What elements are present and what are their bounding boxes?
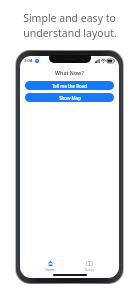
staticText: Tell me the Road	[52, 83, 87, 89]
staticText: understand layout.	[23, 26, 117, 40]
staticText: What Now?	[55, 69, 84, 76]
button[interactable]: Home	[42, 259, 58, 273]
button[interactable]: Guide	[82, 259, 97, 273]
button[interactable]: Tell me the Road	[25, 81, 114, 90]
staticText: Simple and easy to	[23, 11, 116, 25]
button[interactable]: Show Map	[25, 93, 114, 102]
staticText: 3:04	[24, 58, 33, 64]
staticText: Home	[45, 268, 55, 272]
staticText: Guide	[85, 268, 94, 272]
staticText: Show Map	[59, 95, 81, 101]
